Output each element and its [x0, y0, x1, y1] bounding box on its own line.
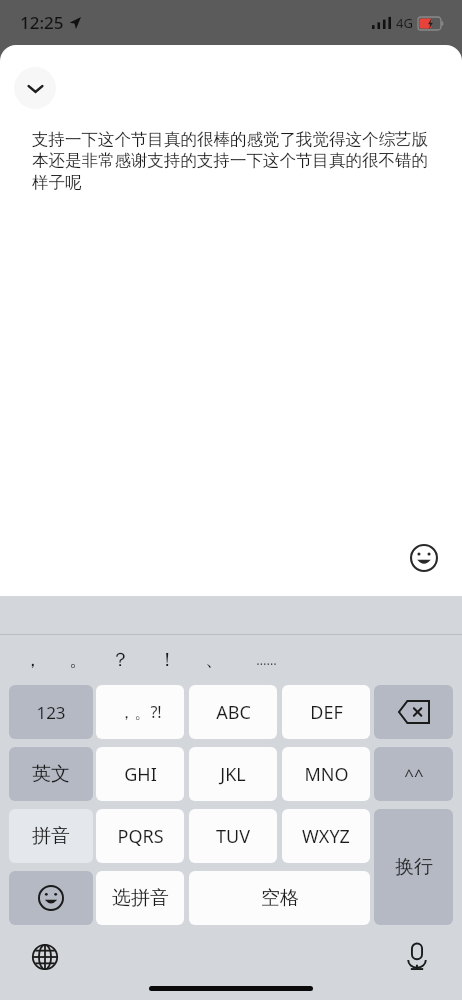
button[interactable]: MNO: [282, 747, 370, 801]
button[interactable]: GHI: [96, 747, 184, 801]
button[interactable]: Emoji keyboard: [9, 871, 93, 925]
staticText: ？: [111, 648, 130, 672]
staticText: 、: [205, 648, 224, 672]
staticText: WXYZ: [302, 824, 350, 849]
staticText: ABC: [216, 700, 251, 725]
staticText: 支持一下这个节目真的很棒的感觉了我觉得这个综艺版本还是非常感谢支持的支持一下这个…: [32, 129, 434, 193]
button[interactable]: Emoji: [404, 538, 444, 578]
button[interactable]: 123: [9, 685, 93, 739]
staticText: ！: [158, 648, 177, 672]
button[interactable]: 。: [56, 635, 100, 685]
button[interactable]: ^^: [374, 747, 453, 801]
button[interactable]: ？: [98, 635, 142, 685]
staticText: JKL: [220, 762, 246, 787]
button[interactable]: Backspace: [374, 685, 453, 739]
button[interactable]: ！: [145, 635, 189, 685]
staticText: 。: [69, 648, 88, 672]
staticText: MNO: [304, 762, 349, 787]
button[interactable]: PQRS: [96, 809, 184, 863]
button[interactable]: 空格: [189, 871, 370, 925]
button[interactable]: ABC: [189, 685, 277, 739]
staticText: 拼音: [32, 824, 70, 848]
button[interactable]: 、: [192, 635, 236, 685]
button[interactable]: Collapse: [14, 67, 56, 109]
button[interactable]: 换行: [374, 809, 453, 925]
staticText: PQRS: [117, 824, 164, 849]
button[interactable]: ，。?!: [96, 685, 184, 739]
staticText: 换行: [395, 855, 433, 879]
button[interactable]: DEF: [282, 685, 370, 739]
staticText: 123: [36, 701, 66, 724]
button[interactable]: Switch keyboard: [26, 938, 64, 976]
staticText: 英文: [32, 762, 70, 786]
button[interactable]: ……: [244, 635, 288, 685]
button[interactable]: 选拼音: [96, 871, 184, 925]
button[interactable]: WXYZ: [282, 809, 370, 863]
button[interactable]: 拼音: [9, 809, 93, 863]
button[interactable]: Voice input: [398, 938, 436, 976]
button[interactable]: ，: [10, 635, 54, 685]
staticText: ，: [23, 648, 42, 672]
button[interactable]: JKL: [189, 747, 277, 801]
staticText: 选拼音: [112, 886, 169, 910]
staticText: ，。?!: [118, 701, 162, 723]
staticText: DEF: [310, 700, 343, 725]
staticText: GHI: [124, 762, 157, 787]
staticText: 空格: [261, 886, 299, 910]
button[interactable]: 英文: [9, 747, 93, 801]
staticText: 4G: [396, 14, 413, 32]
staticText: 12:25: [20, 11, 64, 34]
staticText: ……: [256, 651, 277, 669]
staticText: ^^: [404, 763, 424, 786]
button[interactable]: TUV: [189, 809, 277, 863]
staticText: TUV: [216, 824, 250, 849]
